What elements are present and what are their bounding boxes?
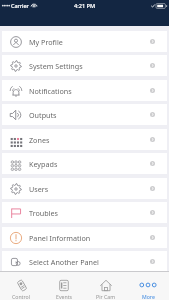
staticText: Panel Information bbox=[29, 233, 91, 243]
staticText: System Settings bbox=[29, 61, 83, 71]
button[interactable]: Pir Cam bbox=[85, 272, 127, 300]
staticText: Events bbox=[56, 293, 73, 300]
button[interactable]: Troubles bbox=[2, 202, 167, 223]
staticText: Troubles bbox=[29, 208, 59, 218]
staticText: More bbox=[142, 293, 155, 300]
button[interactable]: Panel Information bbox=[2, 227, 167, 248]
button[interactable]: More bbox=[127, 272, 169, 300]
staticText: 4:21 PM bbox=[74, 2, 96, 10]
staticText: Select Another Panel bbox=[29, 257, 99, 267]
staticText: Carrier bbox=[11, 2, 29, 9]
button[interactable]: Outputs bbox=[2, 104, 167, 125]
staticText: Users bbox=[29, 184, 49, 194]
staticText: Keypads bbox=[29, 159, 58, 169]
staticText: Control bbox=[12, 293, 31, 300]
button[interactable]: Notifications bbox=[2, 80, 167, 101]
button[interactable]: Events bbox=[43, 272, 85, 300]
button[interactable]: Control bbox=[0, 272, 43, 300]
button[interactable]: Select Another Panel bbox=[2, 251, 167, 272]
staticText: Outputs bbox=[29, 110, 57, 120]
button[interactable]: System Settings bbox=[2, 55, 167, 76]
button[interactable]: Users bbox=[2, 178, 167, 199]
button[interactable]: My Profile bbox=[2, 31, 167, 52]
staticText: Zones bbox=[29, 135, 50, 145]
button[interactable]: Zones bbox=[2, 129, 167, 150]
button[interactable]: Keypads bbox=[2, 153, 167, 174]
staticText: Pir Cam bbox=[96, 293, 116, 300]
staticText: Notifications bbox=[29, 86, 72, 96]
staticText: My Profile bbox=[29, 37, 63, 47]
